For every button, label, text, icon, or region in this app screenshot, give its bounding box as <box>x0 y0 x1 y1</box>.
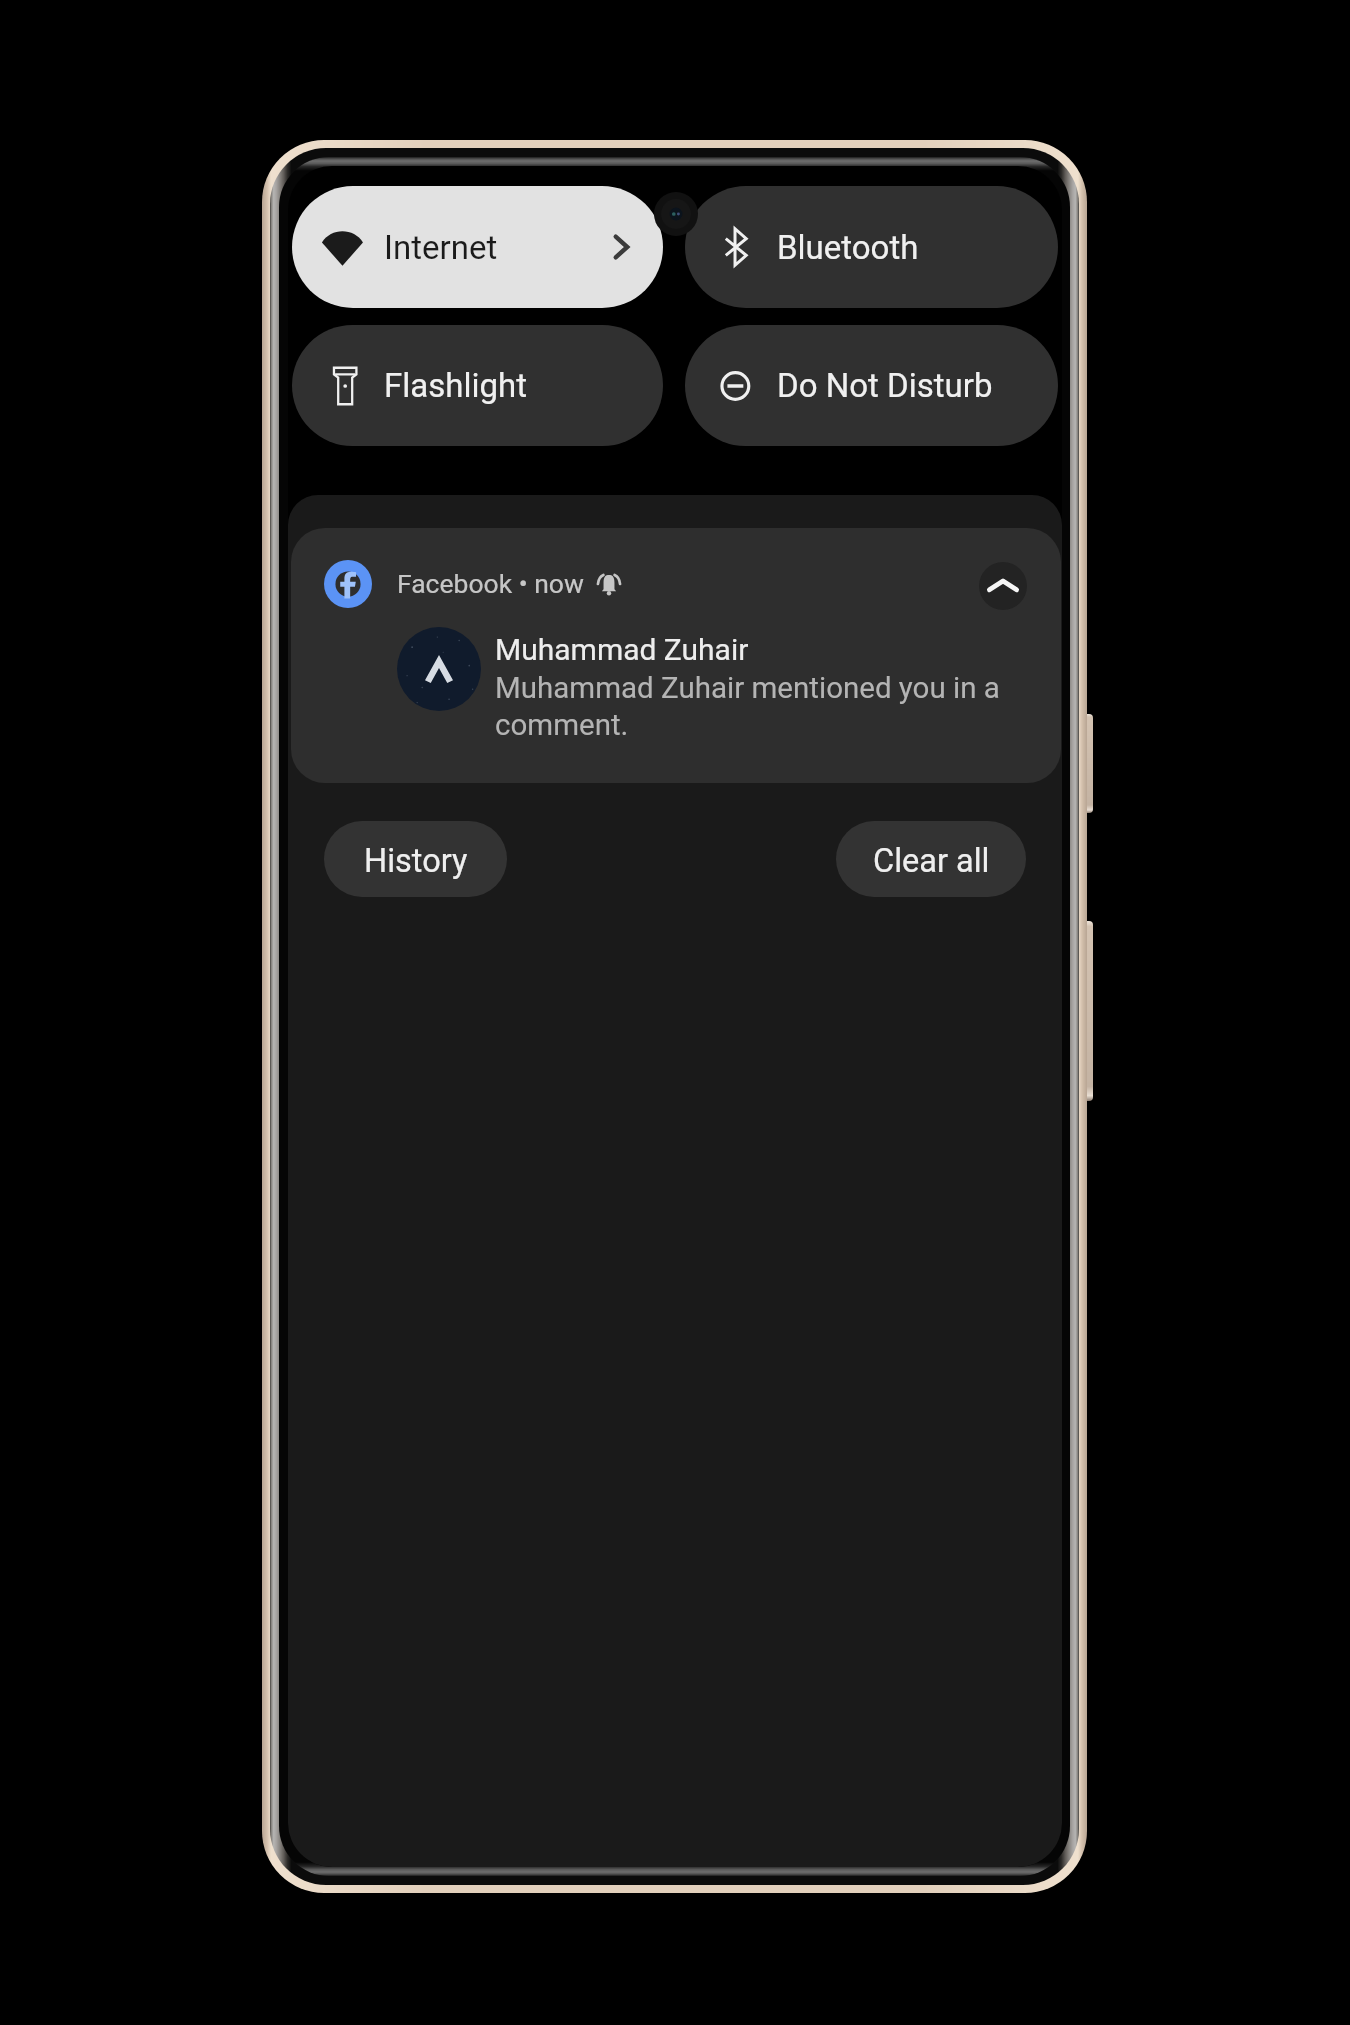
staticText: History <box>364 842 468 880</box>
staticText: Facebook • now <box>397 568 584 599</box>
staticText: Internet <box>384 228 498 267</box>
staticText: Muhammad Zuhair <box>495 632 749 667</box>
button[interactable]: Facebook • now <box>291 528 1061 783</box>
staticText: Do Not Disturb <box>777 366 993 405</box>
button[interactable]: History <box>324 821 507 897</box>
staticText: Clear all <box>873 842 990 880</box>
button[interactable]: Internet <box>292 186 663 308</box>
staticText: Muhammad Zuhair mentioned you in a comme… <box>495 671 1005 742</box>
button[interactable]: Do Not Disturb <box>685 325 1058 446</box>
staticText: Flashlight <box>384 366 527 405</box>
button[interactable]: Flashlight <box>292 325 663 446</box>
staticText: Bluetooth <box>777 228 919 267</box>
button[interactable]: Clear all <box>836 821 1026 897</box>
button[interactable]: Collapse notification <box>979 562 1027 610</box>
button[interactable]: Bluetooth <box>685 186 1058 308</box>
